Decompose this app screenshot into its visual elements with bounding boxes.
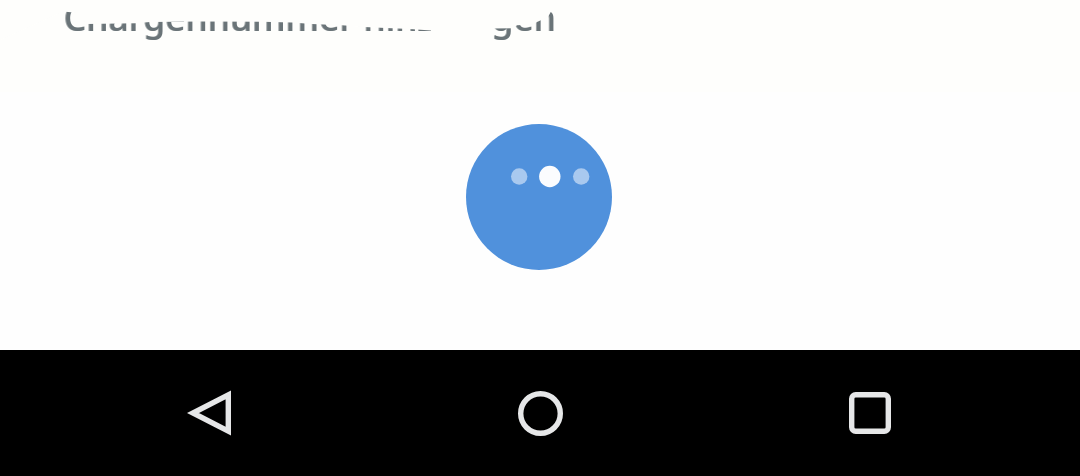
button[interactable]: Recent apps	[810, 350, 930, 476]
button[interactable]: Chargennummer hinzufügen	[0, 0, 1080, 92]
staticText: Chargennummer hinzufügen	[63, 0, 556, 41]
button[interactable]: More options	[466, 124, 612, 270]
button[interactable]: Back	[149, 350, 269, 476]
staticText: Chargennummer hinzufügen	[64, 0, 557, 41]
button[interactable]: Home	[480, 350, 600, 476]
